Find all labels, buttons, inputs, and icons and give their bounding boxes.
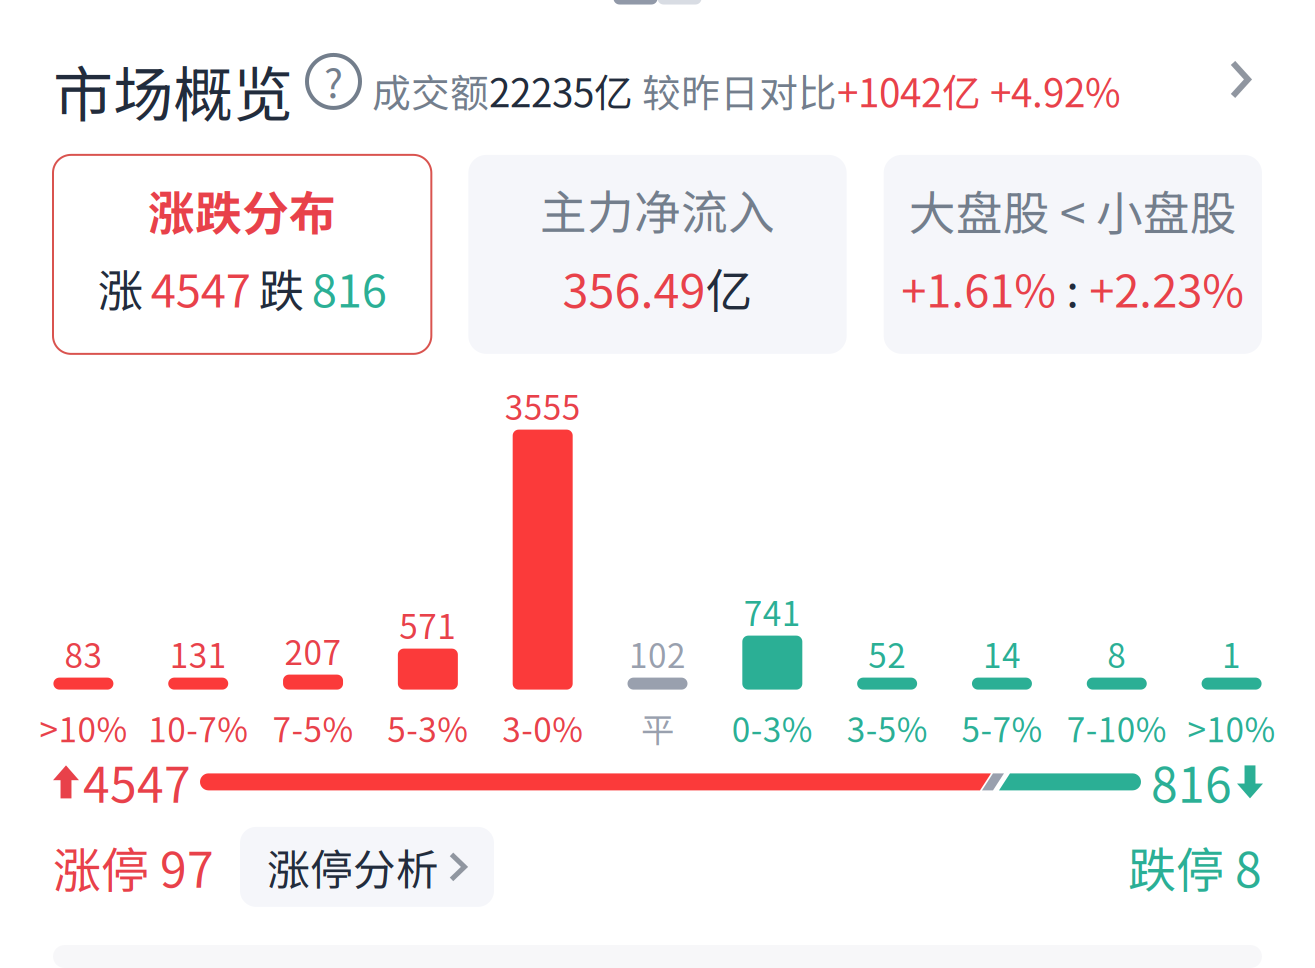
staticText: 涨跌分布: [148, 176, 336, 244]
staticText: 816: [1151, 747, 1232, 817]
staticText: 3-5%: [847, 704, 928, 752]
staticText: 356.49: [562, 254, 705, 321]
staticText: 7-10%: [1067, 704, 1167, 752]
button[interactable]: 涨停分析: [240, 827, 494, 907]
staticText: 741: [744, 587, 801, 636]
staticText: 4547: [83, 747, 191, 817]
staticText: ?: [324, 51, 343, 109]
staticText: 10-7%: [148, 704, 248, 752]
staticText: 跌: [259, 255, 304, 320]
button[interactable]: More: [1218, 71, 1262, 110]
staticText: 102: [629, 629, 686, 678]
staticText: 1: [1222, 629, 1241, 678]
staticText: 5-3%: [387, 704, 468, 752]
staticText: 5-7%: [961, 704, 1042, 752]
staticText: +1.61%: [901, 255, 1056, 320]
staticText: 平: [641, 704, 674, 752]
staticText: 主力净流入: [540, 175, 775, 243]
staticText: 0-3%: [732, 704, 813, 752]
staticText: 7-5%: [272, 704, 353, 752]
staticText: 8: [1107, 629, 1126, 678]
staticText: 市场概览: [53, 47, 293, 134]
staticText: 跌停 8: [1128, 832, 1262, 902]
staticText: 52: [868, 629, 906, 678]
staticText: 涨停 97: [53, 832, 214, 902]
staticText: >10%: [1188, 704, 1276, 752]
staticText: 成交额: [372, 62, 489, 118]
button[interactable]: 主力净流入: [468, 155, 847, 354]
staticText: 较昨日对比: [633, 62, 837, 118]
staticText: +2.23%: [1089, 255, 1244, 320]
staticText: 3-0%: [502, 704, 583, 752]
staticText: 大盘股 < 小盘股: [909, 176, 1237, 244]
staticText: 571: [399, 600, 456, 649]
staticText: 14: [983, 629, 1021, 678]
staticText: 131: [170, 629, 227, 678]
staticText: 涨: [98, 255, 143, 320]
staticText: 亿: [705, 254, 752, 321]
staticText: 83: [64, 629, 102, 678]
button[interactable]: 涨跌分布: [53, 155, 431, 354]
staticText: >10%: [39, 704, 127, 752]
staticText: 22235亿: [489, 62, 633, 118]
staticText: 816: [312, 255, 387, 320]
staticText: +1042亿 +4.92%: [837, 62, 1121, 118]
button[interactable]: 大盘股 < 小盘股: [884, 155, 1262, 354]
staticText: 3555: [505, 381, 581, 430]
staticText: 涨停分析: [267, 836, 439, 898]
staticText: :: [1056, 255, 1089, 320]
staticText: 4547: [151, 255, 251, 320]
staticText: 207: [284, 626, 341, 675]
